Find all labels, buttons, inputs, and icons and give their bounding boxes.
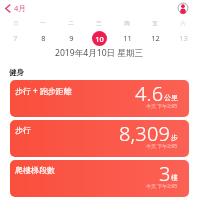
button[interactable]: 8 (29, 30, 57, 46)
staticText: 4.6 (135, 80, 164, 107)
staticText: 五 (152, 20, 158, 27)
staticText: 今天 下午2:05 (146, 103, 178, 110)
staticText: 六 (180, 20, 186, 27)
button[interactable]: 4月 (0, 1, 34, 15)
button[interactable]: 步行 (10, 120, 189, 157)
button[interactable]: 11 (113, 30, 141, 46)
staticText: 步行 + 跑步距離 (15, 85, 72, 96)
staticText: 今天 下午2:05 (146, 183, 178, 190)
staticText: 12 (151, 33, 160, 43)
staticText: 7 (13, 33, 18, 43)
staticText: 二 (68, 20, 74, 27)
staticText: 10 (95, 34, 104, 44)
staticText: 步 (171, 133, 178, 142)
staticText: 今天 下午2:05 (146, 143, 178, 150)
staticText: 8,309 (119, 120, 171, 147)
button[interactable]: 10 (85, 30, 113, 46)
staticText: 2019年4月10日 星期三 (55, 47, 144, 59)
staticText: 9 (69, 33, 74, 43)
staticText: 爬樓梯段數 (15, 165, 55, 175)
staticText: 4月 (14, 3, 26, 13)
staticText: 健身 (9, 68, 24, 77)
button[interactable]: 爬樓梯段數 (10, 160, 189, 197)
staticText: 日 (13, 20, 19, 27)
staticText: 公里 (164, 93, 178, 102)
staticText: 11 (123, 33, 132, 43)
staticText: 13 (179, 33, 188, 43)
button[interactable]: Profile (177, 2, 189, 14)
button[interactable]: 13 (169, 30, 197, 46)
staticText: 步行 (15, 125, 31, 135)
staticText: 三 (96, 20, 102, 27)
button[interactable]: 9 (57, 30, 85, 46)
staticText: 樓 (171, 173, 178, 182)
staticText: 四 (124, 20, 130, 27)
button[interactable]: 12 (141, 30, 169, 46)
staticText: 3 (159, 160, 171, 187)
button[interactable]: 步行 + 跑步距離 (10, 80, 189, 117)
staticText: 一 (40, 20, 46, 27)
button[interactable]: 7 (2, 30, 29, 46)
staticText: 8 (41, 33, 46, 43)
